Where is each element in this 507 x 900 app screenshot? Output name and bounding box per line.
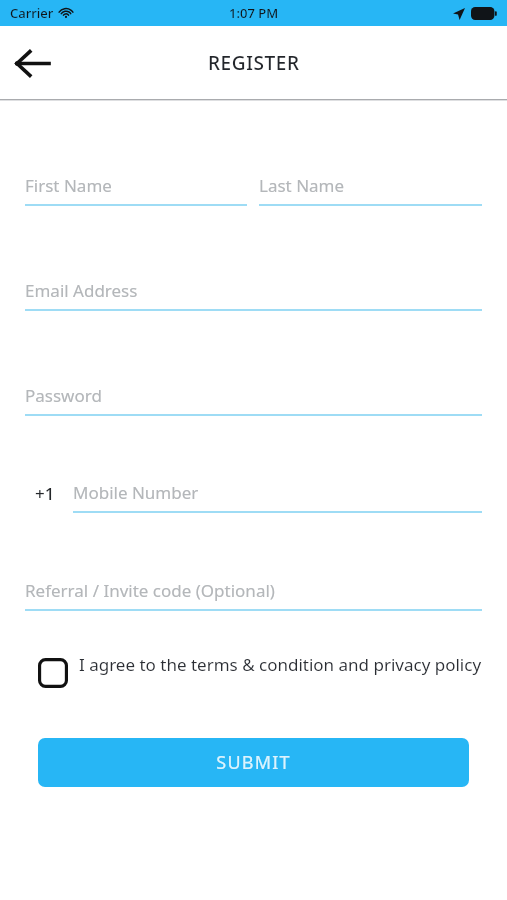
button[interactable]: First Name [25,174,247,206]
staticText: First Name [25,174,112,197]
staticText: SUBMIT [216,750,291,775]
staticText: Carrier [10,4,54,22]
staticText: Last Name [259,174,345,197]
staticText: Email Address [25,279,138,302]
staticText: Referral / Invite code (Optional) [25,579,275,602]
staticText: Password [25,384,102,407]
button[interactable]: I agree to the terms & condition and pri… [25,653,482,688]
button[interactable]: Last Name [259,174,482,206]
button[interactable]: Password [25,384,482,416]
button[interactable]: SUBMIT [38,738,469,787]
button[interactable]: Email Address [25,279,482,311]
staticText: I agree to the terms & condition and pri… [79,653,482,676]
button[interactable]: Back [8,39,56,87]
staticText: Mobile Number [73,481,199,504]
staticText: REGISTER [208,50,300,76]
staticText: 1:07 PM [229,4,279,22]
button[interactable]: Referral / Invite code (Optional) [25,579,482,611]
button[interactable]: Mobile Number [73,481,482,513]
button[interactable]: +1 [35,482,55,505]
